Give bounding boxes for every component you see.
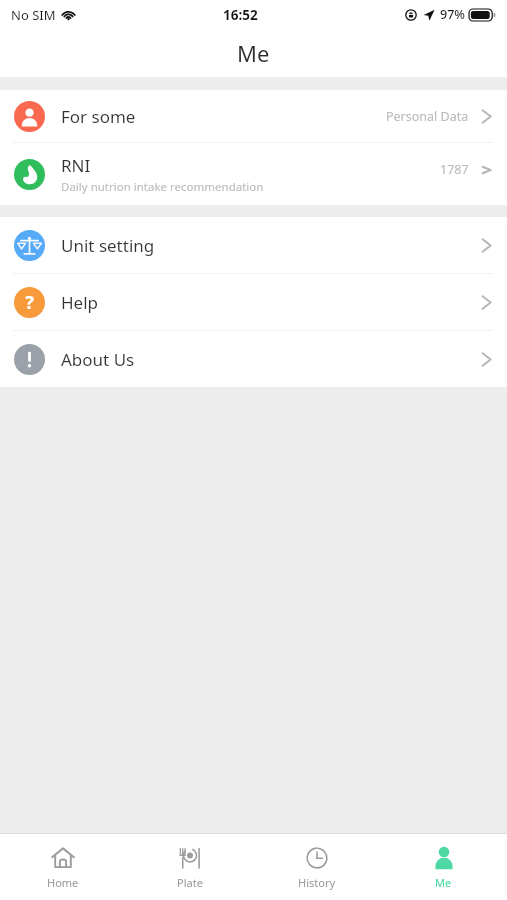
button[interactable]: History: [253, 834, 380, 900]
button[interactable]: ?: [0, 274, 507, 330]
staticText: RNI: [61, 154, 91, 177]
staticText: Plate: [177, 875, 203, 890]
staticText: No SIM: [11, 6, 56, 24]
button[interactable]: Me: [380, 834, 507, 900]
staticText: Me: [237, 38, 270, 68]
staticText: About Us: [61, 348, 135, 371]
staticText: 97%: [440, 6, 465, 23]
staticText: 1787: [440, 161, 469, 178]
button[interactable]: Plate: [126, 834, 253, 900]
button[interactable]: For some: [0, 90, 507, 142]
staticText: For some: [61, 105, 136, 128]
staticText: Unit setting: [61, 234, 155, 257]
staticText: Me: [435, 875, 452, 890]
button[interactable]: Unit setting: [0, 217, 507, 273]
staticText: 16:52: [223, 6, 258, 24]
button[interactable]: Home: [0, 834, 126, 900]
staticText: Home: [47, 875, 79, 890]
button[interactable]: RNI: [0, 143, 507, 205]
staticText: History: [298, 875, 336, 890]
staticText: Help: [61, 291, 99, 314]
staticText: Daily nutrion intake recommendation: [61, 179, 264, 195]
staticText: ?: [25, 290, 34, 315]
staticText: Personal Data: [386, 108, 469, 125]
button[interactable]: About Us: [0, 331, 507, 387]
